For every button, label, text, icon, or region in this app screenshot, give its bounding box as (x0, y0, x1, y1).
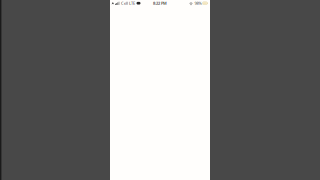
staticText: 8:22 PM (153, 0, 167, 6)
staticText: LTE (129, 0, 135, 6)
staticText: Cell (121, 0, 128, 6)
staticText: 98% (194, 0, 201, 6)
